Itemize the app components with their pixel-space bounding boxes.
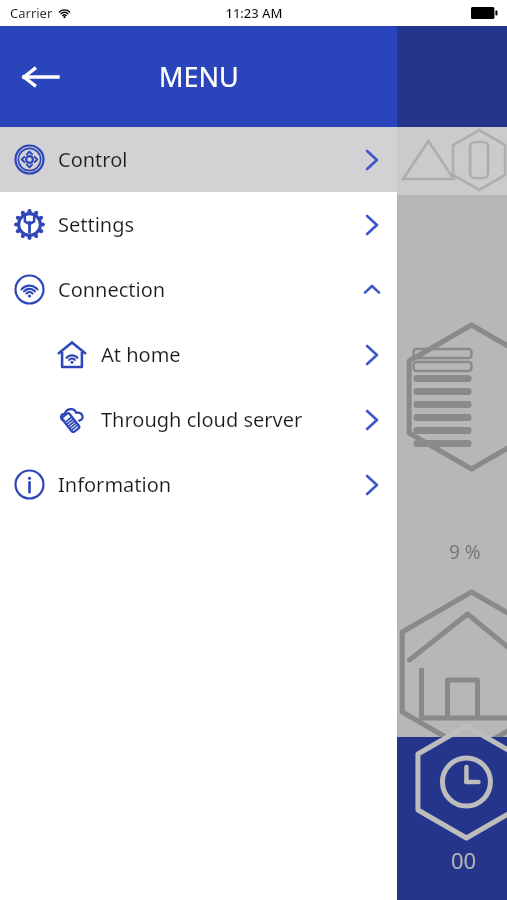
staticText: Through cloud server (101, 406, 303, 433)
staticText: Settings (58, 211, 135, 238)
button[interactable]: Settings (0, 192, 397, 257)
staticText: Information (58, 471, 172, 498)
staticText: MENU (159, 58, 239, 95)
staticText: At home (101, 341, 181, 368)
staticText: Connection (58, 276, 166, 303)
button[interactable]: Through cloud server (0, 387, 397, 452)
button[interactable]: Back (12, 49, 68, 105)
staticText: Carrier (10, 4, 53, 22)
button[interactable]: Connection (0, 257, 397, 322)
button[interactable]: At home (0, 322, 397, 387)
button[interactable]: Control (0, 127, 397, 192)
staticText: 00 (451, 845, 477, 875)
staticText: 11:23 AM (225, 4, 283, 22)
staticText: Control (58, 146, 128, 173)
staticText: 9 % (449, 539, 481, 565)
button[interactable]: Information (0, 452, 397, 517)
